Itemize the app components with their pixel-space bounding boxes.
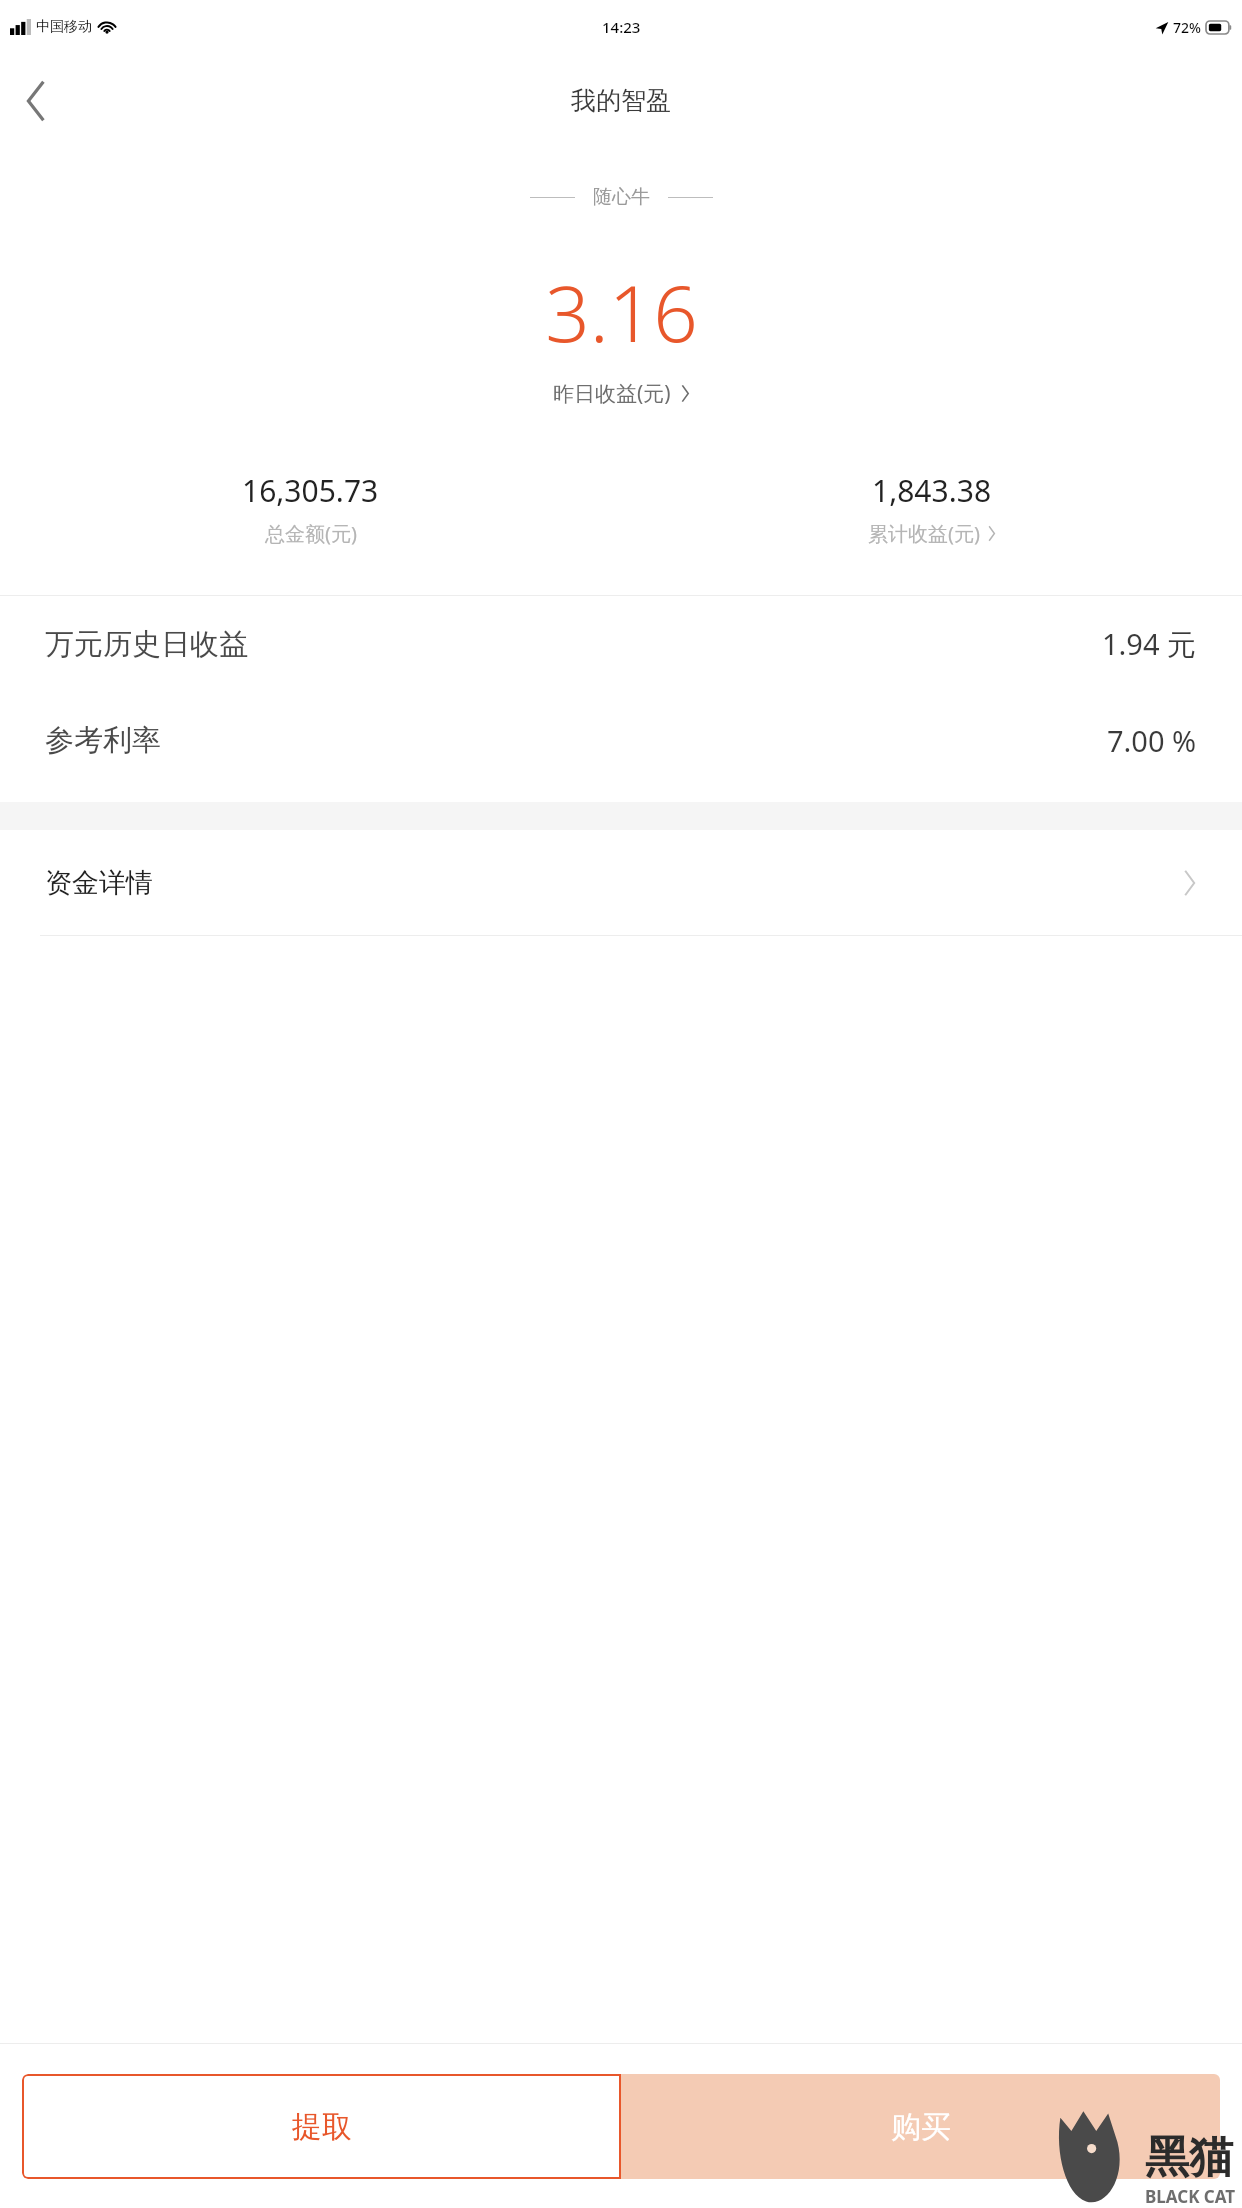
staticText: 1.94 元 — [1102, 624, 1197, 664]
staticText: 随心牛 — [593, 185, 650, 209]
staticText: 资金详情 — [45, 866, 153, 900]
staticText: 中国移动 — [36, 18, 92, 36]
button[interactable]: 参考利率 — [0, 692, 1242, 788]
staticText: 我的智盈 — [571, 85, 671, 116]
staticText: 1,843.38 — [872, 470, 992, 511]
staticText: 黑猫 — [1145, 2130, 1233, 2185]
staticText: 3.16 — [545, 259, 698, 365]
staticText: 购买 — [891, 2108, 951, 2146]
button[interactable]: 昨日收益(元) — [0, 379, 1242, 408]
staticText: 14:23 — [602, 17, 641, 37]
staticText: 16,305.73 — [242, 470, 379, 511]
staticText: 提取 — [292, 2108, 352, 2146]
button[interactable]: 16,305.73 — [0, 470, 621, 547]
staticText: 累计收益(元) — [868, 520, 980, 547]
staticText: 万元历史日收益 — [45, 626, 248, 663]
staticText: 总金额(元) — [265, 520, 357, 547]
button[interactable]: Back — [0, 65, 72, 137]
staticText: 昨日收益(元) — [553, 379, 671, 408]
staticText: 72% — [1173, 18, 1201, 37]
staticText: 参考利率 — [45, 722, 161, 759]
button[interactable]: 资金详情 — [0, 830, 1242, 935]
staticText: BLACK CAT — [1145, 2185, 1236, 2208]
button[interactable]: 1,843.38 — [621, 470, 1242, 547]
button[interactable]: 购买 — [621, 2074, 1220, 2179]
staticText: 7.00 % — [1107, 721, 1197, 760]
button[interactable]: 万元历史日收益 — [0, 596, 1242, 692]
button[interactable]: 提取 — [22, 2074, 621, 2179]
